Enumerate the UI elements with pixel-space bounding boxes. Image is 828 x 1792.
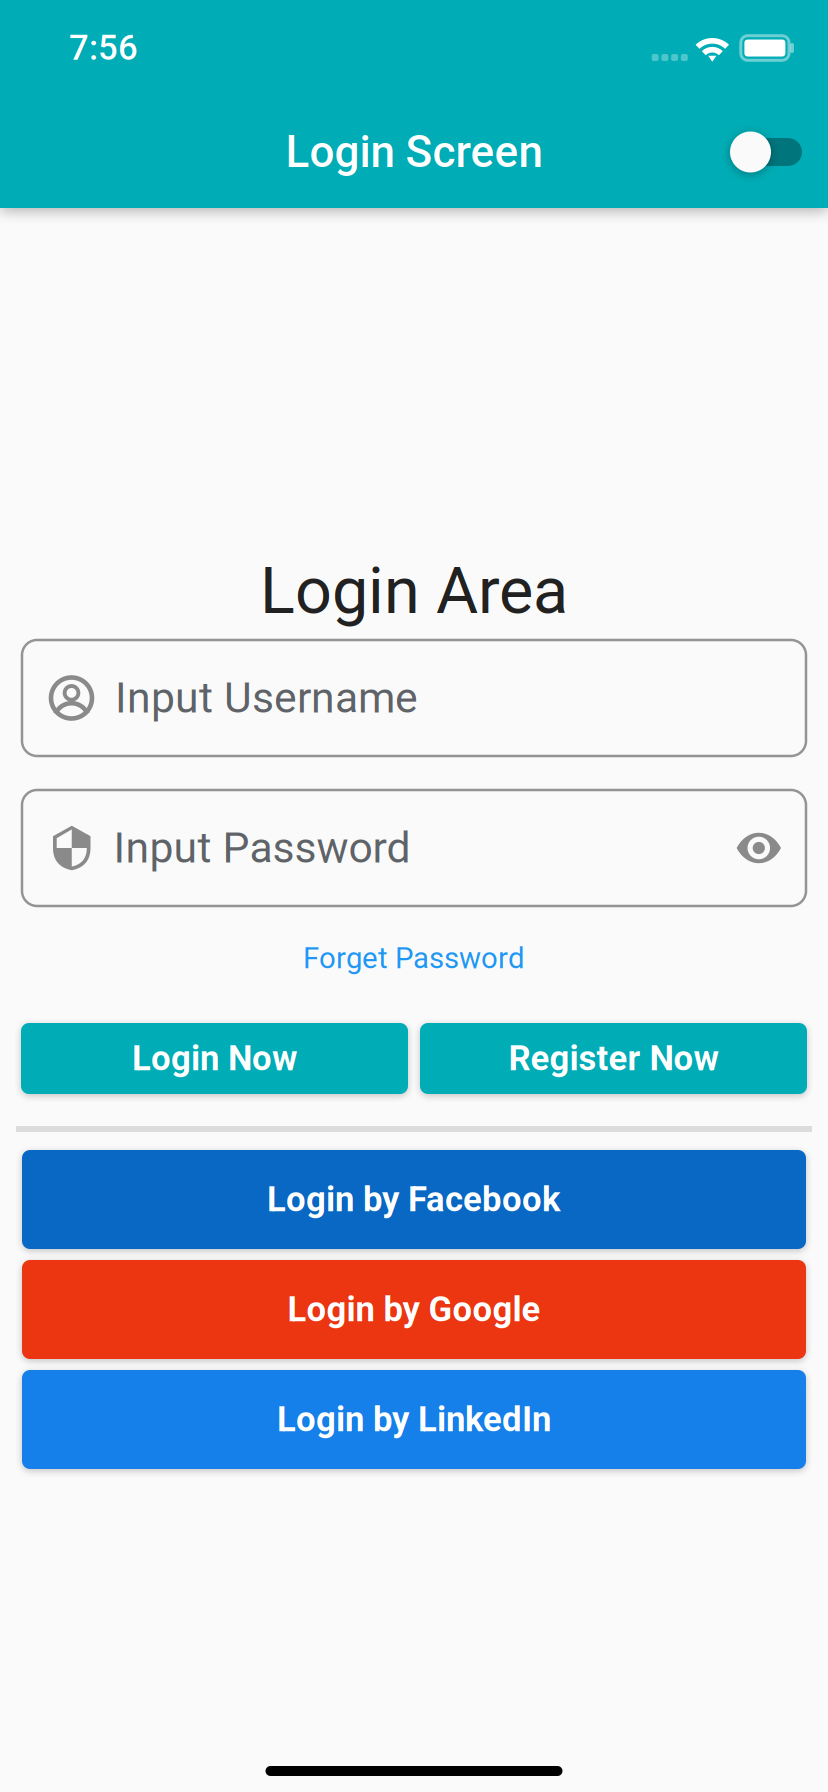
staticText: Input Password — [113, 823, 410, 873]
staticText: Login by Google — [287, 1289, 540, 1330]
button[interactable]: Register Now — [420, 1023, 807, 1094]
button[interactable]: Show password — [737, 833, 781, 863]
button[interactable]: Login Now — [21, 1023, 408, 1094]
staticText: Login by Facebook — [267, 1179, 561, 1220]
staticText: Login Area — [260, 553, 568, 629]
staticText: Input Username — [115, 673, 418, 723]
button[interactable]: Login by Google — [22, 1260, 806, 1359]
staticText: Login Screen — [285, 126, 542, 178]
button[interactable]: Login by Facebook — [22, 1150, 806, 1249]
staticText: 7:56 — [69, 28, 138, 68]
staticText: Forget Password — [303, 941, 525, 975]
button[interactable]: Toggle theme — [716, 128, 816, 176]
staticText: Register Now — [508, 1038, 718, 1079]
staticText: Login Now — [132, 1038, 297, 1079]
button[interactable]: Forget Password — [0, 906, 828, 1023]
button[interactable]: Login by LinkedIn — [22, 1370, 806, 1469]
staticText: Login by LinkedIn — [277, 1399, 551, 1440]
